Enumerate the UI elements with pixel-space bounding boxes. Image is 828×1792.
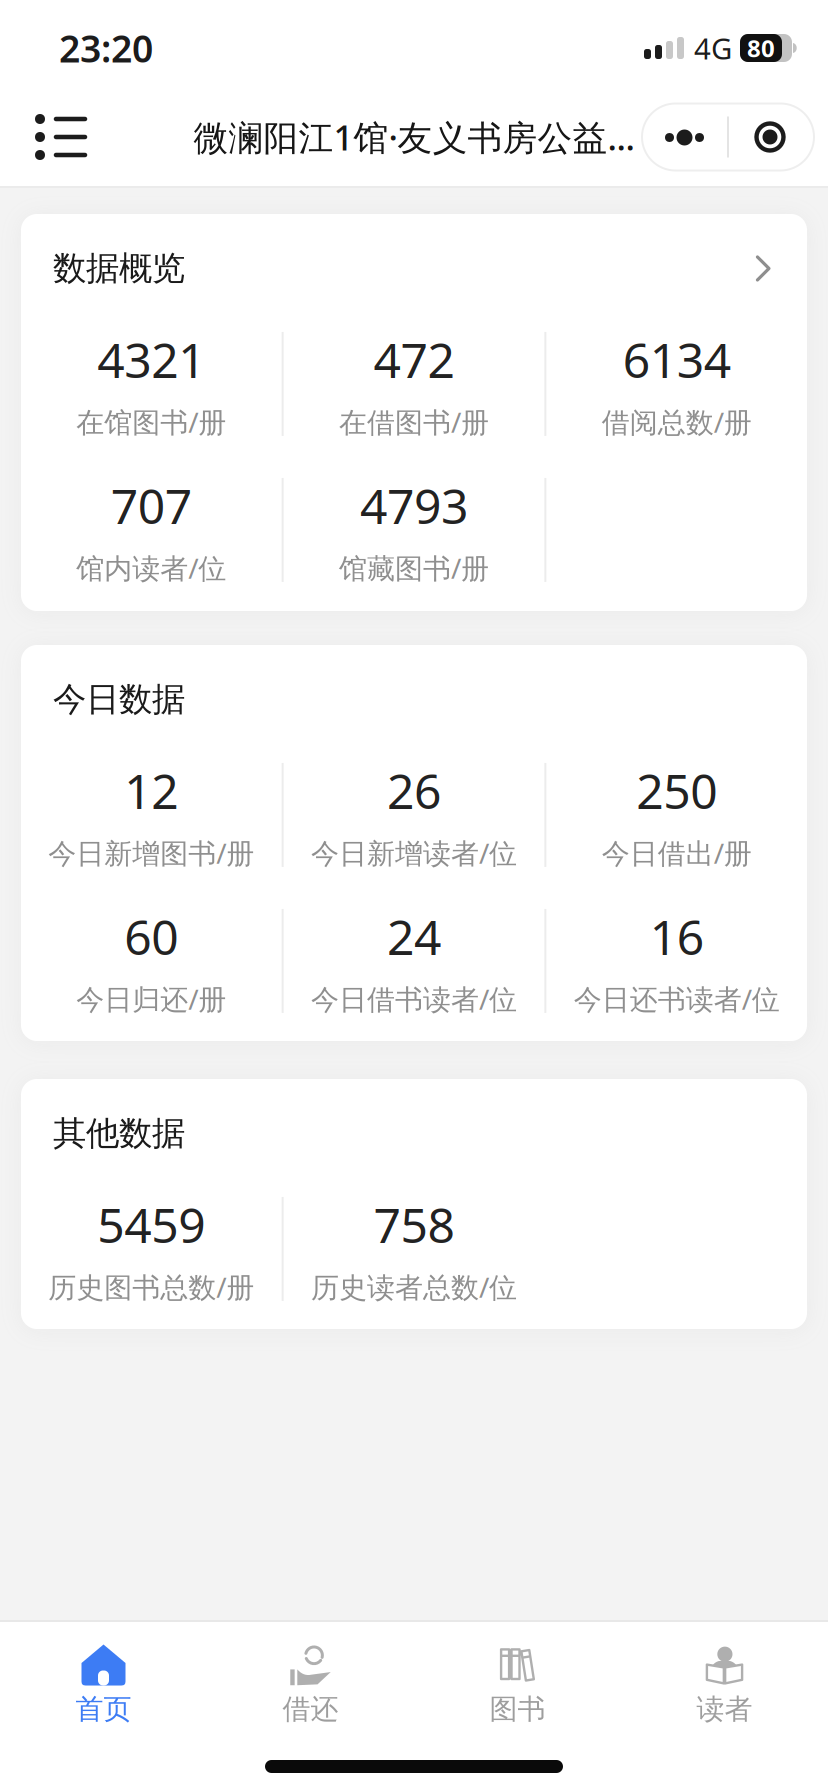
- button[interactable]: Menu: [35, 115, 87, 159]
- staticText: 微澜阳江1馆·友义书房公益...: [193, 114, 634, 160]
- staticText: 馆藏图书/册: [339, 549, 489, 586]
- staticText: 今日归还/册: [76, 980, 226, 1017]
- staticText: 12: [124, 758, 178, 822]
- staticText: 今日数据: [53, 679, 185, 720]
- staticText: 其他数据: [53, 1113, 185, 1154]
- staticText: 首页: [75, 1692, 131, 1726]
- staticText: 历史图书总数/册: [48, 1268, 254, 1305]
- button[interactable]: Exit mini program: [728, 102, 815, 171]
- staticText: 6134: [623, 327, 731, 391]
- staticText: 读者: [696, 1692, 752, 1726]
- staticText: 4321: [97, 327, 205, 391]
- staticText: 26: [387, 758, 441, 822]
- staticText: 馆内读者/位: [76, 549, 226, 586]
- staticText: 4G: [694, 28, 732, 67]
- staticText: 80: [747, 32, 775, 64]
- staticText: 在馆图书/册: [76, 403, 226, 440]
- staticText: 今日新增图书/册: [48, 834, 254, 871]
- staticText: 今日新增读者/位: [311, 834, 517, 871]
- staticText: 16: [650, 904, 704, 968]
- staticText: 在借图书/册: [339, 403, 489, 440]
- staticText: 758: [373, 1192, 454, 1256]
- staticText: 60: [124, 904, 178, 968]
- button[interactable]: 首页: [0, 1642, 207, 1726]
- staticText: 今日还书读者/位: [574, 980, 780, 1017]
- staticText: 5459: [97, 1192, 205, 1256]
- staticText: 24: [387, 904, 441, 968]
- staticText: 今日借出/册: [602, 834, 752, 871]
- staticText: 历史读者总数/位: [311, 1268, 517, 1305]
- staticText: 250: [636, 758, 717, 822]
- staticText: 472: [373, 327, 454, 391]
- button[interactable]: 借还: [207, 1642, 414, 1726]
- button[interactable]: 数据概览: [21, 214, 807, 611]
- staticText: 数据概览: [53, 248, 185, 289]
- staticText: 707: [111, 473, 192, 537]
- staticText: 借阅总数/册: [602, 403, 752, 440]
- staticText: 图书: [489, 1692, 545, 1726]
- staticText: 今日借书读者/位: [311, 980, 517, 1017]
- staticText: 借还: [282, 1692, 338, 1726]
- staticText: 4793: [360, 473, 468, 537]
- button[interactable]: 读者: [621, 1642, 828, 1726]
- staticText: 23:20: [59, 23, 153, 73]
- button[interactable]: 图书: [414, 1642, 621, 1726]
- button[interactable]: More: [641, 102, 728, 171]
